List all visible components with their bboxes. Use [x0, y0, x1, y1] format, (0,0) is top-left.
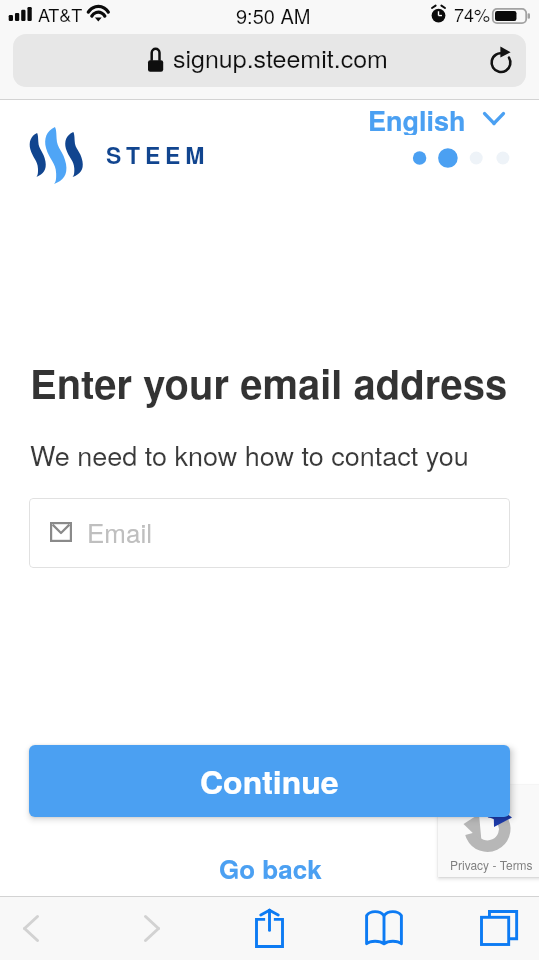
button[interactable]: Email: [29, 498, 510, 568]
button[interactable]: Continue: [29, 745, 510, 817]
button[interactable]: Bookmarks: [348, 896, 420, 960]
button[interactable]: signup.steemit.com: [13, 34, 526, 87]
button[interactable]: Share: [233, 896, 305, 960]
staticText: 9:50 AM: [236, 1, 311, 30]
button[interactable]: English: [368, 101, 505, 135]
button[interactable]: Back: [0, 896, 67, 960]
button[interactable]: Tabs: [462, 896, 534, 960]
button[interactable]: Reload: [476, 34, 526, 87]
button[interactable]: Go back: [180, 848, 360, 888]
staticText: We need to know how to contact you: [30, 435, 469, 474]
staticText: STEEM: [106, 138, 210, 171]
staticText: Email: [87, 513, 153, 550]
button[interactable]: Forward: [116, 896, 188, 960]
staticText: AT&T: [38, 1, 83, 27]
staticText: signup.steemit.com: [173, 39, 388, 75]
button[interactable]: Privacy - Terms: [438, 785, 539, 877]
staticText: English: [368, 101, 466, 135]
staticText: Privacy - Terms: [450, 856, 539, 873]
staticText: Continue: [200, 758, 339, 804]
staticText: 74%: [454, 1, 491, 27]
staticText: Go back: [219, 850, 322, 887]
staticText: Enter your email address: [30, 354, 508, 411]
